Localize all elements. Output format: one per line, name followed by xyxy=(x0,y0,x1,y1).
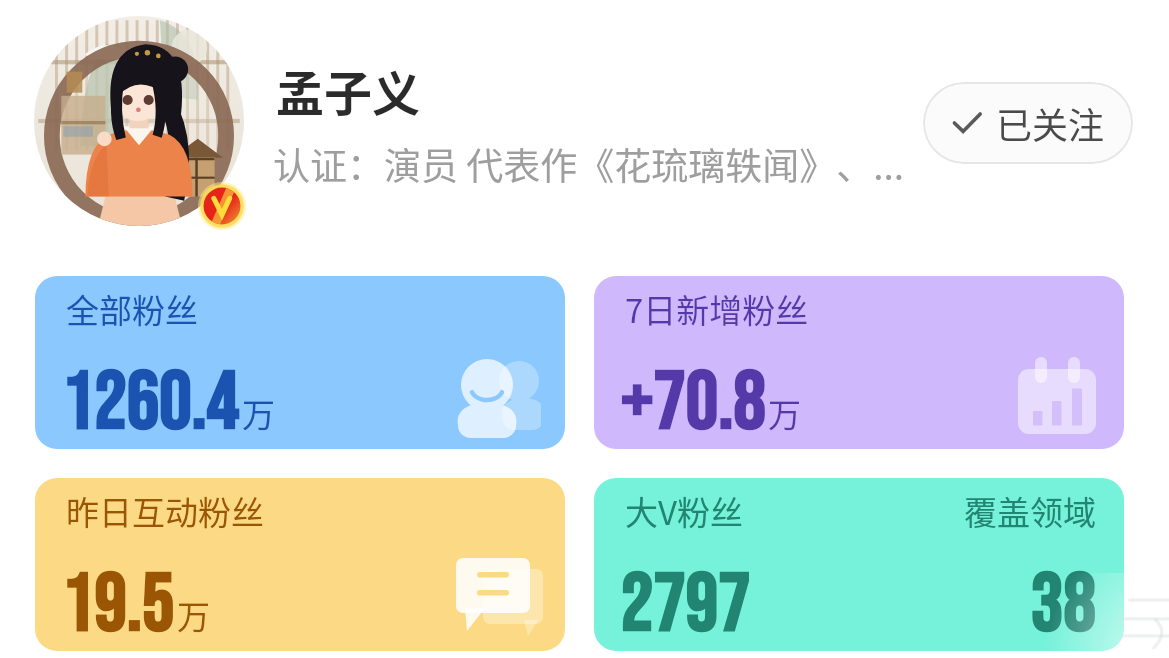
button[interactable]: 已关注 xyxy=(923,82,1133,164)
staticText: 万 xyxy=(768,389,801,437)
staticText: 1260.4 xyxy=(62,355,240,449)
staticText: 2797 xyxy=(621,557,751,651)
button[interactable]: 全部粉丝 xyxy=(35,276,565,449)
staticText: 大V粉丝 xyxy=(625,487,743,535)
button[interactable]: 昨日互动粉丝 xyxy=(35,478,565,651)
staticText: 19.5 xyxy=(62,557,175,651)
button[interactable]: 7日新增粉丝 xyxy=(594,276,1124,449)
staticText: 昨日互动粉丝 xyxy=(66,487,264,535)
staticText: 万 xyxy=(177,591,210,639)
staticText: 7日新增粉丝 xyxy=(625,285,809,333)
button[interactable]: 大V粉丝 xyxy=(594,478,1124,651)
staticText: 万 xyxy=(242,389,275,437)
button[interactable]: Profile avatar xyxy=(34,16,244,226)
staticText: 已关注 xyxy=(996,97,1105,149)
staticText: 认证：演员 代表作《花琉璃轶闻》、... xyxy=(273,137,905,191)
staticText: 全部粉丝 xyxy=(66,285,198,333)
staticText: 孟子义 xyxy=(276,55,421,125)
staticText: 覆盖领域 xyxy=(964,487,1096,535)
staticText: +70.8 xyxy=(621,355,766,449)
staticText: 38 xyxy=(1031,557,1096,651)
